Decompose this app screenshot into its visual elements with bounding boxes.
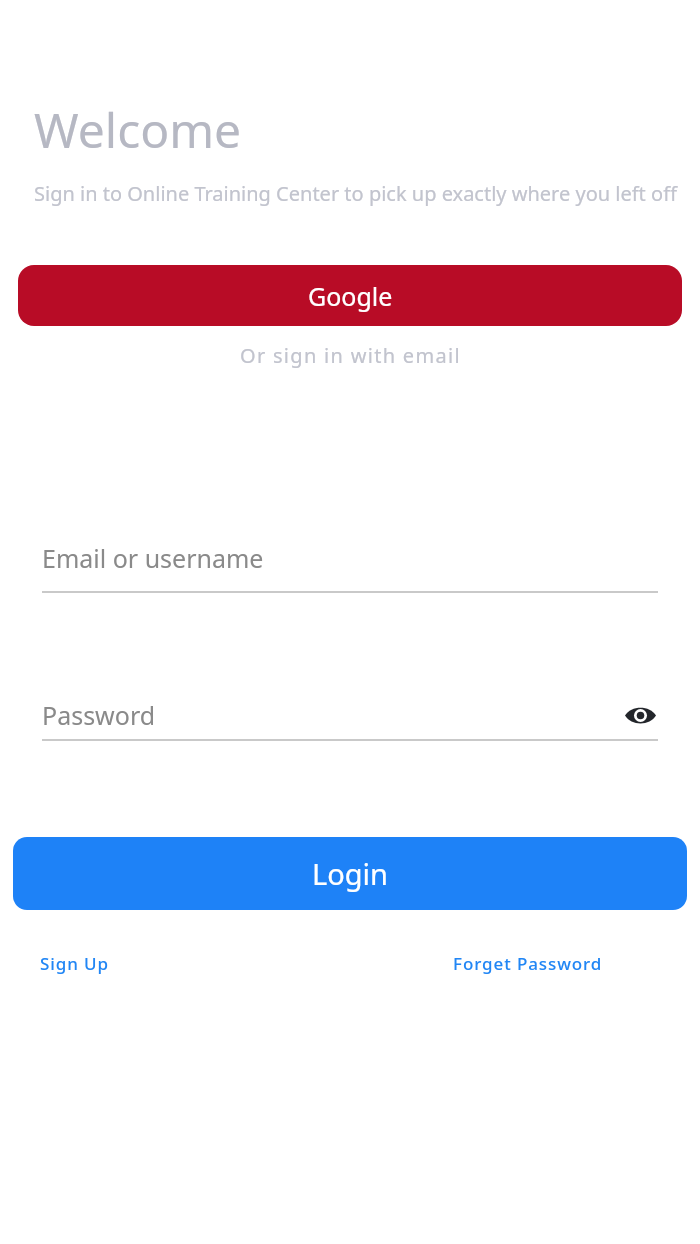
- staticText: Or sign in with email: [240, 342, 461, 369]
- button[interactable]: Password: [42, 698, 622, 732]
- button[interactable]: Login: [13, 837, 687, 910]
- button[interactable]: Google: [18, 265, 682, 326]
- staticText: Welcome: [34, 97, 242, 162]
- staticText: Password: [42, 698, 156, 732]
- staticText: Forget Password: [453, 952, 603, 975]
- button[interactable]: Email or username: [42, 541, 658, 593]
- staticText: Email or username: [42, 541, 264, 575]
- staticText: Sign in to Online Training Center to pic…: [34, 180, 677, 207]
- button[interactable]: Forget Password: [453, 952, 603, 975]
- staticText: Login: [312, 854, 388, 893]
- button[interactable]: Sign Up: [40, 952, 109, 975]
- staticText: Google: [308, 279, 393, 313]
- staticText: Sign Up: [40, 952, 109, 975]
- button[interactable]: Show password: [622, 697, 658, 733]
